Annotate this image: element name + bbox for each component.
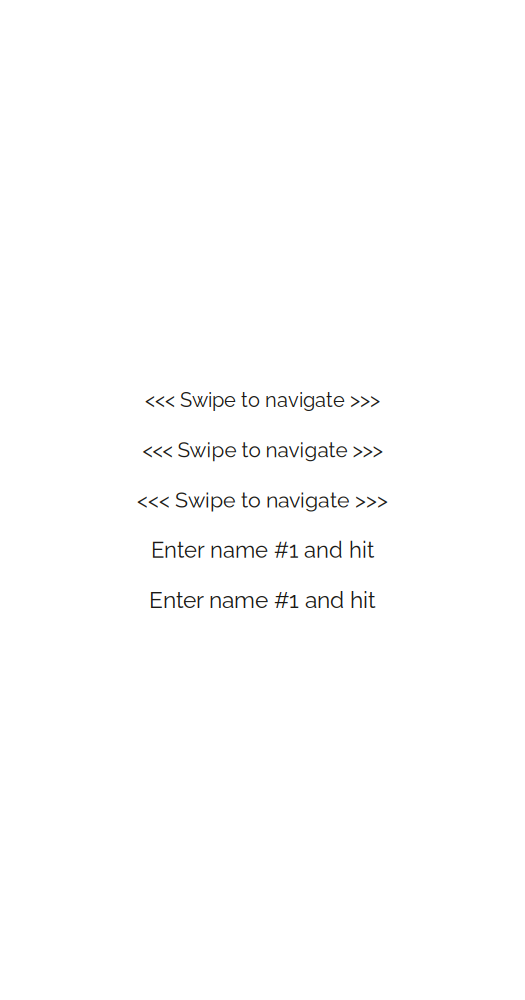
staticText: <<< Swipe to navigate >>> <box>137 487 388 512</box>
staticText: <<< Swipe to navigate >>> <box>142 438 382 462</box>
staticText: Enter name #1 and hit <box>149 587 376 613</box>
staticText: Enter name #1 and hit <box>151 537 374 563</box>
staticText: <<< Swipe to navigate >>> <box>145 388 380 412</box>
